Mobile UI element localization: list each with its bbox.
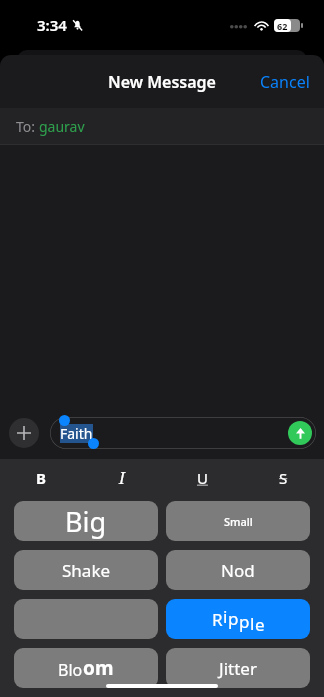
staticText: R bbox=[212, 608, 223, 631]
button[interactable]: R bbox=[166, 599, 310, 639]
staticText: 62 bbox=[277, 20, 288, 32]
staticText: U bbox=[197, 468, 208, 488]
button[interactable]: Small bbox=[166, 501, 310, 541]
button[interactable]: To: bbox=[0, 108, 324, 144]
staticText: om bbox=[83, 655, 114, 681]
staticText: To: bbox=[16, 117, 39, 136]
button[interactable]: Cancel bbox=[246, 61, 324, 103]
staticText: Faith bbox=[60, 424, 93, 443]
staticText: Nod bbox=[221, 559, 255, 582]
staticText: Cancel bbox=[260, 71, 310, 93]
button[interactable]: Nod bbox=[166, 550, 310, 590]
staticText: I bbox=[119, 467, 125, 489]
button[interactable]: S bbox=[243, 459, 324, 496]
staticText: Blo bbox=[58, 659, 83, 681]
staticText: l bbox=[250, 612, 255, 635]
staticText: B bbox=[36, 468, 46, 488]
staticText: gaurav bbox=[39, 117, 85, 136]
staticText: Big bbox=[65, 503, 107, 540]
button[interactable]: Add attachment bbox=[9, 418, 39, 448]
staticText: p bbox=[228, 607, 239, 630]
staticText: i bbox=[223, 605, 228, 628]
button[interactable]: Send bbox=[288, 421, 312, 445]
button[interactable] bbox=[14, 599, 158, 639]
staticText: Shake bbox=[62, 559, 111, 582]
staticText: New Message bbox=[108, 71, 216, 93]
staticText: S bbox=[279, 468, 288, 488]
button[interactable]: Jitter bbox=[166, 648, 310, 688]
staticText: 3:34 bbox=[37, 15, 67, 35]
button[interactable]: Faith bbox=[50, 417, 316, 449]
button[interactable]: U bbox=[162, 459, 243, 496]
button[interactable]: Blo bbox=[14, 648, 158, 688]
button[interactable]: B bbox=[0, 459, 81, 496]
staticText: e bbox=[255, 613, 265, 636]
button[interactable]: Shake bbox=[14, 550, 158, 590]
button[interactable]: Big bbox=[14, 501, 158, 541]
staticText: Small bbox=[224, 514, 253, 529]
staticText: Jitter bbox=[219, 657, 257, 680]
button[interactable]: I bbox=[81, 459, 162, 496]
staticText: p bbox=[239, 610, 250, 633]
